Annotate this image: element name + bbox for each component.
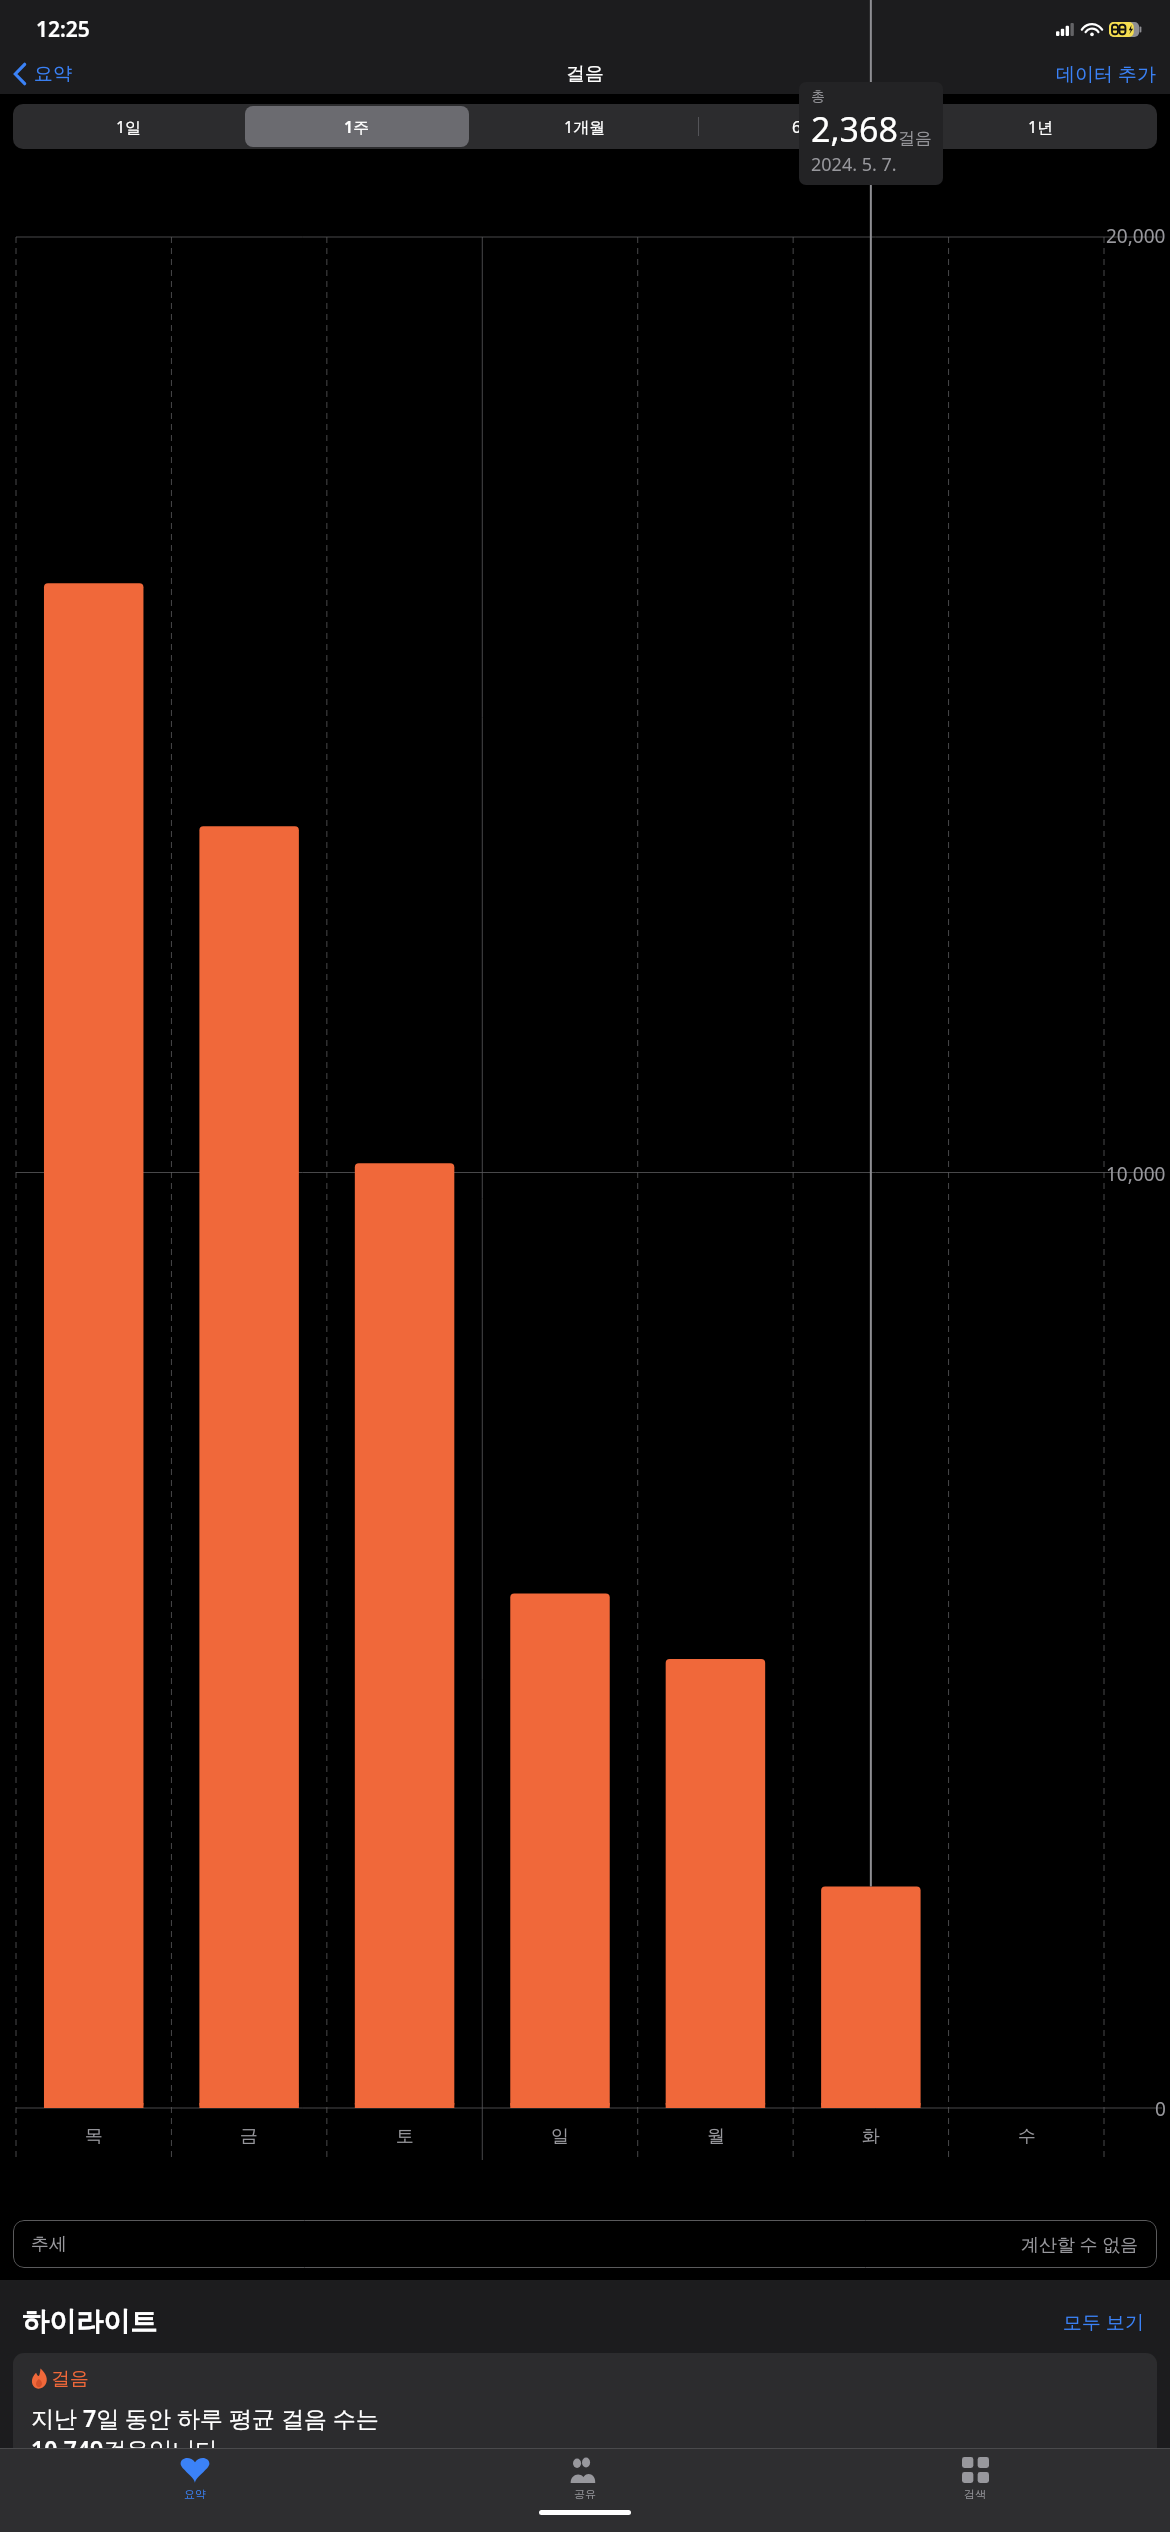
staticText: 걸음 [898,128,932,149]
staticText: 추세 [31,2233,67,2256]
other: Browse [962,2457,989,2483]
staticText: 12:25 [36,15,90,44]
staticText: 월 [707,2125,725,2148]
button[interactable]: Sharing [390,2449,780,2510]
staticText: 금 [240,2125,258,2148]
staticText: 토 [396,2125,414,2148]
other: Wi-Fi [1083,23,1101,36]
staticText: 요약 [34,62,72,86]
staticText: 20,000 [1106,223,1166,249]
staticText: 일 [551,2125,569,2148]
staticText: 지난 7일 동안 하루 평균 걸음 수는 10,749걸음입니다. [31,2402,380,2448]
button[interactable]: 추세 [13,2220,1157,2268]
staticText: 2,368 [811,106,898,152]
staticText: 0 [1155,2096,1166,2122]
staticText: 10,000 [1106,1161,1166,1187]
other: Sharing [570,2457,600,2483]
staticText: 1개월 [564,116,606,138]
staticText: 데이터 추가 [1056,61,1156,87]
button[interactable]: 1일 [17,106,241,147]
other: Cellular signal [1056,23,1075,36]
staticText: 총 [811,88,825,106]
button[interactable]: 모두 보기 [1059,2305,1148,2339]
staticText: 화 [862,2125,880,2148]
button[interactable]: 요약 [0,58,82,90]
staticText: 수 [1018,2125,1036,2148]
button[interactable]: 데이터 추가 [1042,57,1170,91]
staticText: 공유 [574,2487,596,2501]
staticText: 6개월 [792,116,834,138]
button[interactable]: Browse [780,2449,1170,2510]
button[interactable]: 6개월 [701,106,925,147]
staticText: 목 [85,2125,103,2148]
staticText: 걸음 [51,2367,89,2391]
button[interactable]: 걸음 [13,2353,1157,2448]
other: Summary [180,2457,210,2483]
staticText: 1주 [344,116,370,138]
staticText: 1년 [1028,116,1054,138]
staticText: 하이라이트 [22,2305,157,2339]
staticText: 검색 [964,2487,986,2501]
staticText: 계산할 수 없음 [1021,2232,1139,2257]
staticText: 요약 [184,2487,206,2501]
staticText: 모두 보기 [1063,2309,1144,2335]
button[interactable]: 1주 [245,106,469,147]
button[interactable]: Summary [0,2449,390,2510]
button[interactable]: 1개월 [473,106,697,147]
button[interactable]: 1년 [929,106,1153,147]
other: Battery 85% charging [1109,22,1142,37]
staticText: 걸음 [566,62,604,86]
staticText: 2024. 5. 7. [811,152,897,177]
staticText: 1일 [116,116,142,138]
